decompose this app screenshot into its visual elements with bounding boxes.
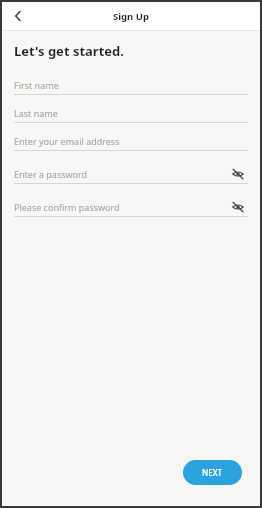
button[interactable]: Toggle password visibility (230, 199, 246, 215)
staticText: Please confirm password (14, 201, 120, 213)
button[interactable]: Enter your email address (14, 131, 248, 150)
button[interactable]: First name (14, 75, 248, 94)
button[interactable]: Last name (14, 103, 248, 122)
staticText: First name (14, 79, 59, 91)
button[interactable]: NEXT (183, 460, 242, 485)
staticText: NEXT (202, 467, 223, 478)
staticText: Let's get started. (14, 42, 124, 60)
button[interactable]: Toggle password visibility (230, 166, 246, 182)
staticText: Enter a password (14, 168, 88, 180)
button[interactable]: Back (6, 4, 30, 28)
staticText: Sign Up (113, 10, 149, 23)
staticText: Enter your email address (14, 135, 120, 147)
button[interactable]: Enter a password (14, 164, 248, 183)
staticText: Last name (14, 107, 58, 119)
button[interactable]: Please confirm password (14, 197, 248, 216)
